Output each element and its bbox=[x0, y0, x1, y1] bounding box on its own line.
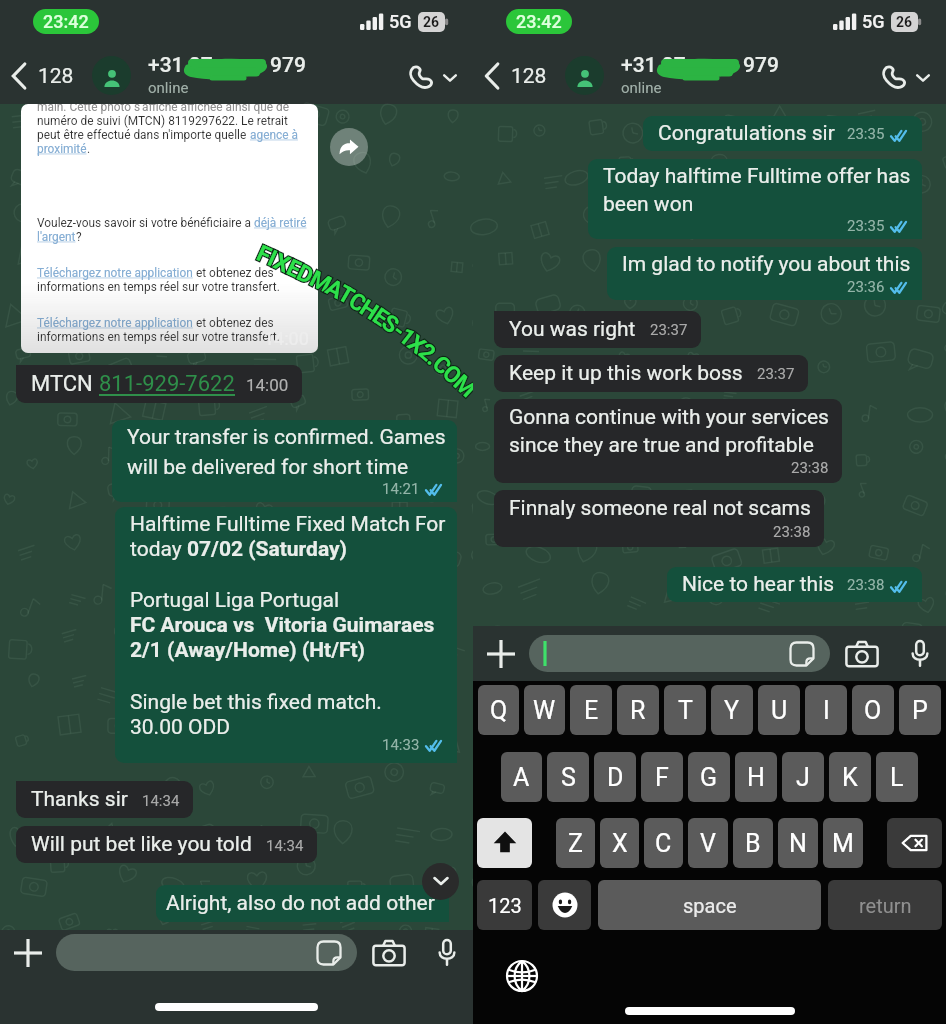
button[interactable]: Call bbox=[401, 51, 473, 101]
button[interactable]: Thanks sir bbox=[16, 781, 193, 818]
staticText: Portugal Liga Portugal bbox=[130, 588, 340, 613]
staticText: main. Cette photo s'affiche affichée ain… bbox=[37, 104, 290, 114]
staticText: +31 07 979 bbox=[621, 53, 779, 78]
button[interactable]: Congratulations sir bbox=[643, 116, 922, 151]
button[interactable]: Camera bbox=[357, 930, 421, 975]
staticText: 07/02 (Saturday) bbox=[187, 537, 347, 562]
button[interactable]: Keep it up this work boss bbox=[494, 355, 808, 392]
button[interactable]: Contact photo bbox=[565, 56, 604, 95]
staticText: informations en temps réel sur votre tra… bbox=[37, 330, 280, 344]
button[interactable]: Scroll to bottom bbox=[422, 863, 459, 900]
staticText: Single bet this fixed match. bbox=[130, 690, 382, 715]
button[interactable]: Back bbox=[473, 52, 551, 100]
staticText: today bbox=[130, 537, 187, 562]
button[interactable]: S bbox=[547, 752, 589, 802]
button[interactable]: space bbox=[598, 880, 821, 930]
button[interactable]: X bbox=[600, 818, 639, 868]
button[interactable]: Voice message bbox=[421, 930, 473, 975]
button[interactable]: Stickers bbox=[56, 934, 357, 971]
button[interactable]: I bbox=[805, 685, 847, 735]
button[interactable]: Emoji bbox=[538, 880, 591, 930]
button[interactable]: Change keyboard language bbox=[498, 952, 546, 1000]
button[interactable]: Your transfer is confirmed. Games will b… bbox=[112, 420, 457, 502]
button[interactable]: J bbox=[782, 752, 824, 802]
button[interactable]: V bbox=[688, 818, 728, 868]
staticText: MTCN bbox=[31, 371, 99, 397]
button[interactable]: D bbox=[594, 752, 636, 802]
staticText: proximité bbox=[37, 142, 87, 156]
button[interactable]: P bbox=[899, 685, 941, 735]
staticText: S bbox=[561, 763, 576, 792]
button[interactable]: Shift bbox=[477, 818, 532, 868]
button[interactable]: W bbox=[524, 685, 565, 735]
button[interactable]: MTCN bbox=[16, 365, 302, 403]
button[interactable]: R bbox=[617, 685, 659, 735]
button[interactable]: Voice message bbox=[894, 626, 946, 681]
button[interactable]: Z bbox=[556, 818, 595, 868]
button[interactable]: Alright, also do not add other bbox=[156, 885, 449, 922]
staticText: 23:38 bbox=[847, 576, 885, 594]
button[interactable]: return bbox=[828, 880, 942, 930]
button[interactable]: F bbox=[641, 752, 683, 802]
button[interactable]: Backspace bbox=[887, 818, 942, 868]
staticText: N bbox=[789, 829, 807, 858]
button[interactable]: Back bbox=[0, 52, 78, 100]
staticText: Téléchargez notre application bbox=[37, 266, 193, 280]
staticText: X bbox=[612, 829, 628, 858]
staticText: Will put bet like you told bbox=[31, 832, 252, 857]
staticText: numéro de suivi (MTCN) 8119297622. Le re… bbox=[37, 114, 288, 128]
button[interactable]: main. Cette photo s'affiche affichée ain… bbox=[21, 104, 318, 353]
staticText: 23:35 bbox=[847, 125, 885, 143]
button[interactable]: M bbox=[823, 818, 863, 868]
button[interactable]: H bbox=[735, 752, 777, 802]
button[interactable]: B bbox=[733, 818, 773, 868]
staticText: Your transfer is confirmed. Games will b… bbox=[127, 425, 446, 479]
button[interactable]: O bbox=[852, 685, 894, 735]
button[interactable]: Y bbox=[711, 685, 753, 735]
staticText: et obtenez des bbox=[193, 316, 274, 330]
staticText: B bbox=[745, 829, 761, 858]
button[interactable]: T bbox=[664, 685, 706, 735]
button[interactable]: Stickers bbox=[529, 635, 830, 672]
staticText: 14:21 bbox=[382, 480, 420, 498]
button[interactable]: A bbox=[501, 752, 542, 802]
button[interactable]: L bbox=[876, 752, 918, 802]
staticText: 23:37 bbox=[757, 365, 795, 383]
button[interactable]: G bbox=[688, 752, 730, 802]
staticText: déjà retiré bbox=[254, 216, 307, 230]
button[interactable]: C bbox=[644, 818, 683, 868]
staticText: C bbox=[655, 829, 672, 858]
button[interactable]: N bbox=[778, 818, 818, 868]
button[interactable]: Stickers bbox=[786, 638, 818, 670]
button[interactable]: Will put bet like you told bbox=[16, 826, 317, 863]
staticText: 23:35 bbox=[847, 217, 885, 235]
button[interactable]: E bbox=[570, 685, 612, 735]
staticText: U bbox=[771, 696, 788, 725]
button[interactable]: Attach bbox=[0, 930, 56, 975]
button[interactable]: Stickers bbox=[313, 937, 345, 969]
button[interactable]: Halftime Fulltime Fixed Match For bbox=[115, 507, 457, 763]
button[interactable]: Attach bbox=[473, 626, 529, 681]
button[interactable]: Camera bbox=[830, 626, 894, 681]
button[interactable]: Im glad to notify you about this bbox=[607, 247, 922, 300]
staticText: G bbox=[700, 763, 718, 792]
button[interactable]: Today halftime Fulltime offer has been w… bbox=[588, 159, 922, 239]
button[interactable]: Gonna continue with your services since … bbox=[494, 399, 842, 483]
staticText: Im glad to notify you about this bbox=[622, 252, 911, 277]
button[interactable]: Nice to hear this bbox=[667, 567, 922, 602]
button[interactable]: K bbox=[829, 752, 871, 802]
staticText: 14:00 bbox=[246, 375, 289, 395]
button[interactable]: Forward bbox=[330, 128, 368, 166]
button[interactable]: Finnaly someone real not scams bbox=[494, 490, 824, 547]
staticText: P bbox=[912, 696, 928, 725]
button[interactable]: Call bbox=[874, 51, 946, 101]
button[interactable]: You was right bbox=[494, 311, 701, 348]
staticText: 5G bbox=[862, 11, 885, 32]
button[interactable]: Contact photo bbox=[92, 56, 131, 95]
button[interactable]: Q bbox=[478, 685, 519, 735]
button[interactable]: U bbox=[758, 685, 800, 735]
staticText: V bbox=[700, 829, 716, 858]
button[interactable]: 123 bbox=[477, 880, 532, 930]
staticText: Voulez-vous savoir si votre bénéficiaire… bbox=[37, 216, 254, 230]
staticText: W bbox=[533, 696, 556, 725]
